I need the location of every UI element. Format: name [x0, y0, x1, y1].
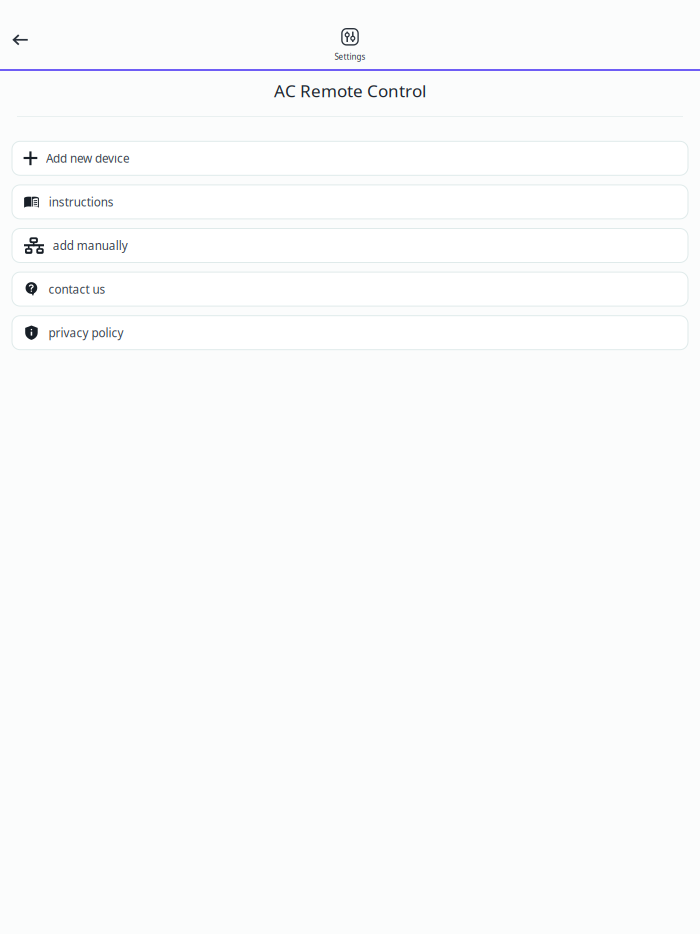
staticText: AC Remote Control [274, 79, 426, 102]
button[interactable]: Settings [320, 7, 380, 62]
button[interactable]: contact us [12, 272, 688, 306]
button[interactable]: add manually [12, 228, 688, 262]
staticText: privacy policy [48, 325, 123, 341]
button[interactable]: privacy policy [12, 316, 688, 350]
button[interactable]: instructions [12, 185, 688, 219]
staticText: Add new device [46, 150, 130, 166]
button[interactable]: Add new device [12, 141, 688, 175]
staticText: contact us [48, 281, 105, 297]
staticText: instructions [49, 194, 114, 210]
staticText: Settings [334, 51, 365, 62]
button[interactable]: Back [2, 22, 38, 58]
staticText: add manually [53, 237, 128, 253]
